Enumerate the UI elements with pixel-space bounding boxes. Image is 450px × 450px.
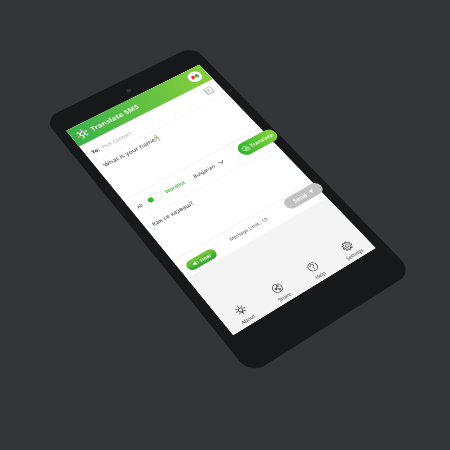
staticText: What is your name? [101,135,159,168]
staticText: Hear [198,252,213,263]
staticText: Pick Contact [100,130,133,150]
button[interactable]: Hear [184,247,219,272]
button[interactable]: Send [281,181,326,211]
staticText: Как се казваш? [150,199,195,228]
button[interactable]: App icon [185,69,205,84]
staticText: To: [90,146,101,155]
button[interactable]: Share [254,271,306,312]
button[interactable]: Translate SMS [66,65,213,146]
button[interactable]: Help [290,250,341,290]
staticText: Help [313,270,327,280]
staticText: Share [276,290,293,303]
button[interactable]: To: [83,84,224,159]
button[interactable]: Pick contact [202,86,215,95]
staticText: Translate [248,132,275,149]
staticText: All [135,202,144,210]
button[interactable]: About [217,293,270,335]
staticText: Bulgarian [191,163,216,179]
staticText: Settings [344,247,365,261]
staticText: Wordlist [163,179,186,195]
button[interactable]: Settings [324,230,375,269]
staticText: About [239,312,257,326]
staticText: Send [291,191,309,204]
button[interactable]: Toggle wordlist [142,190,165,206]
button[interactable]: Bulgarian [191,158,225,179]
button[interactable]: Translate [234,127,281,157]
staticText: Message Limit : 10 [228,216,269,242]
staticText: Translate SMS [88,103,141,133]
